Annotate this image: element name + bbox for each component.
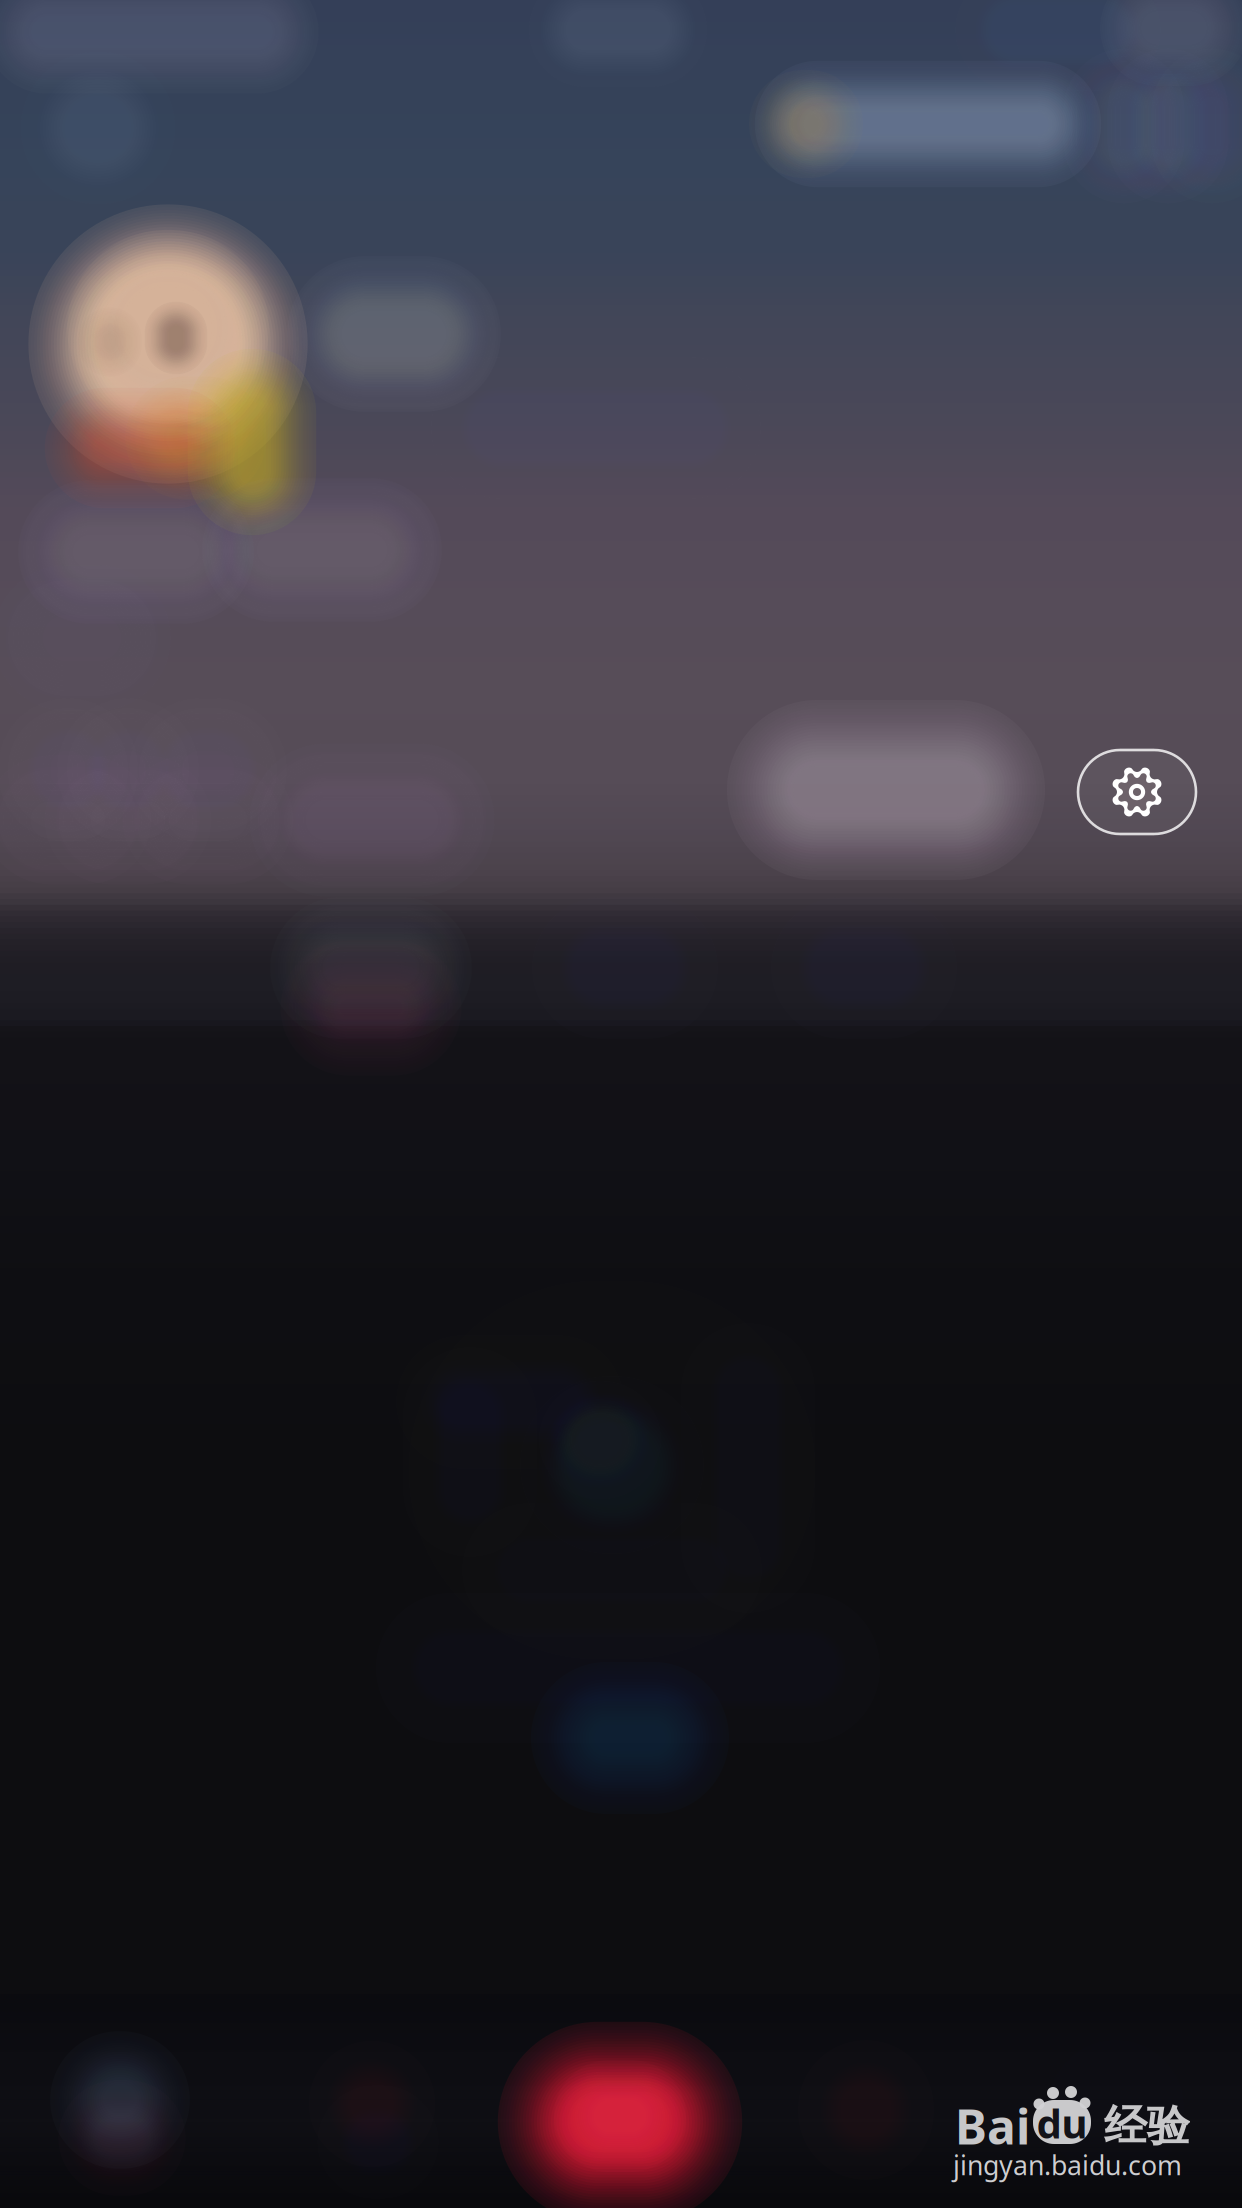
button[interactable]: Tab [0, 0, 1242, 2208]
button[interactable]: Home [0, 0, 1242, 2208]
button[interactable]: Me [0, 0, 1242, 2208]
staticText: du [1036, 2096, 1087, 2149]
button[interactable]: Discover [0, 0, 1242, 2208]
button[interactable]: Create [0, 0, 1242, 2208]
button[interactable]: Messages [0, 0, 1242, 2208]
staticText: jingyan.baidu.com [953, 2147, 1182, 2183]
staticText: 经验 [1104, 2100, 1190, 2152]
button[interactable]: Settings [1078, 750, 1196, 834]
button[interactable]: Tab [0, 0, 1242, 2208]
button[interactable]: Selected tab [0, 0, 1242, 2208]
staticText: Bai [955, 2094, 1030, 2158]
